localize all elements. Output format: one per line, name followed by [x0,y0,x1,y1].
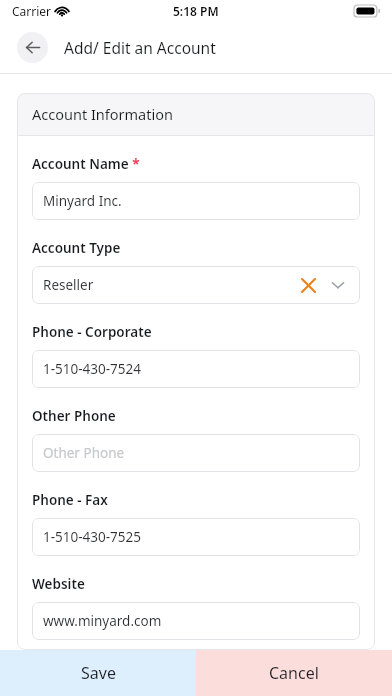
staticText: Website [32,575,85,593]
staticText: Account Type [32,239,121,257]
staticText: Other Phone [43,444,349,462]
staticText: Account Information [32,104,173,124]
staticText: Add/ Edit an Account [64,37,216,58]
button[interactable]: Other Phone [32,434,360,472]
staticText: Carrier [12,3,52,19]
button[interactable]: Back [17,32,48,63]
button[interactable]: www.minyard.com [32,602,360,640]
staticText: 1-510-430-7525 [43,528,349,546]
staticText: Phone - Fax [32,491,108,509]
staticText: Minyard Inc. [43,192,349,210]
button[interactable]: Save [0,650,196,696]
button[interactable]: Clear [297,274,319,296]
button[interactable]: 1-510-430-7524 [32,350,360,388]
button[interactable]: Cancel [196,650,392,696]
staticText: www.minyard.com [43,612,349,630]
staticText: 1-510-430-7524 [43,360,349,378]
staticText: 5:18 PM [173,3,219,19]
staticText: Account Name * [32,155,140,173]
staticText: Reseller [43,276,297,294]
staticText: Save [81,662,116,684]
button[interactable]: Minyard Inc. [32,182,360,220]
staticText: Phone - Corporate [32,323,152,341]
button[interactable]: 1-510-430-7525 [32,518,360,556]
staticText: Other Phone [32,407,116,425]
button[interactable]: Open dropdown [327,274,349,296]
staticText: Cancel [269,662,319,684]
button[interactable]: Reseller [32,266,360,304]
